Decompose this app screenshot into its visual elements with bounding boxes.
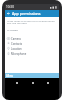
staticText: Camera — [11, 37, 21, 41]
button[interactable]: Back — [12, 78, 21, 87]
button[interactable]: Microphone — [5, 51, 59, 56]
button[interactable]: Recent apps — [43, 78, 52, 87]
staticText: Location — [11, 47, 22, 51]
staticText: Allow — [6, 74, 14, 78]
button[interactable]: Home — [28, 78, 37, 87]
staticText: Contacts — [11, 42, 23, 46]
button[interactable]: Camera — [5, 36, 59, 41]
button[interactable]: Location — [5, 46, 59, 51]
button[interactable]: Back — [5, 10, 12, 17]
button[interactable]: Contacts — [5, 41, 59, 46]
staticText: 10:30 — [6, 5, 14, 9]
button[interactable]: Allow — [5, 73, 59, 78]
staticText: App permissions — [12, 11, 41, 16]
staticText: Allow Maps to access your location while… — [7, 19, 57, 24]
staticText: Microphone — [11, 52, 27, 56]
staticText: ALLOWED — [7, 29, 18, 32]
